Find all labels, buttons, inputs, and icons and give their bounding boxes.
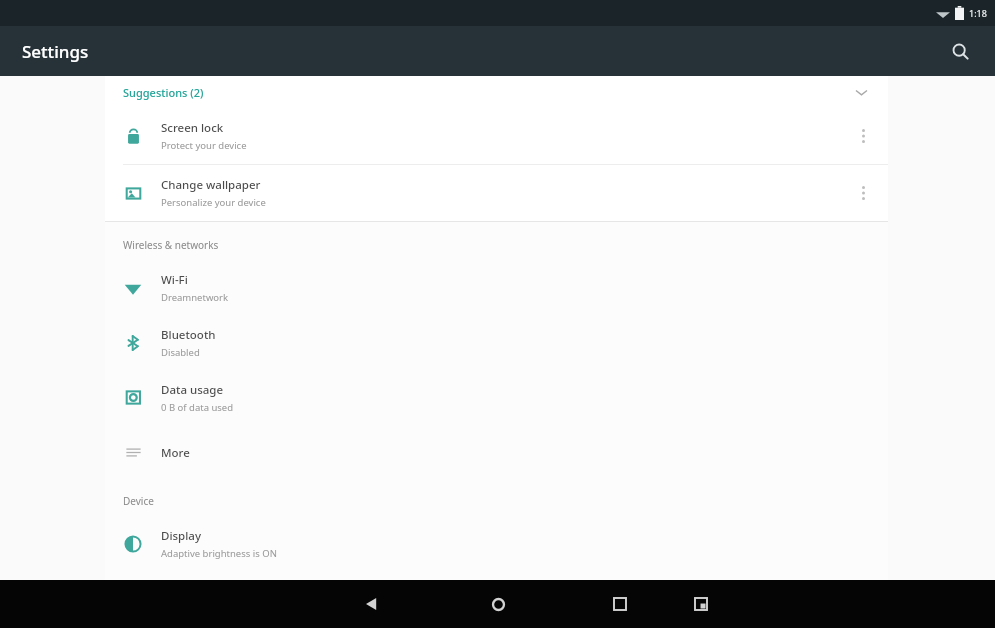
button[interactable]: Bluetooth xyxy=(105,315,888,370)
staticText: Device xyxy=(123,494,154,508)
button[interactable]: Wi-Fi xyxy=(105,260,888,315)
button[interactable]: More options xyxy=(850,180,876,206)
button[interactable]: Suggestions (2) xyxy=(105,76,888,108)
button[interactable]: Change wallpaper xyxy=(105,165,888,221)
staticText: Adaptive brightness is ON xyxy=(161,547,277,560)
button[interactable]: More xyxy=(105,425,888,480)
button[interactable]: Home xyxy=(481,587,515,621)
staticText: Settings xyxy=(22,40,89,63)
other: Collapse suggestions xyxy=(850,81,872,103)
staticText: 0 B of data used xyxy=(161,401,234,414)
staticText: Personalize your device xyxy=(161,196,266,209)
button[interactable]: Data usage xyxy=(105,370,888,425)
staticText: Disabled xyxy=(161,346,200,359)
staticText: More xyxy=(161,445,190,461)
button[interactable]: Screen lock xyxy=(105,108,888,164)
staticText: Suggestions (2) xyxy=(123,85,204,100)
staticText: Screen lock xyxy=(161,120,224,136)
staticText: Display xyxy=(161,528,201,544)
button[interactable]: Recent apps xyxy=(603,587,637,621)
staticText: Wireless & networks xyxy=(123,238,219,252)
staticText: Data usage xyxy=(161,382,224,398)
button[interactable]: Search xyxy=(943,34,977,68)
button[interactable]: More options xyxy=(850,123,876,149)
staticText: Change wallpaper xyxy=(161,177,261,193)
button[interactable]: Back xyxy=(355,587,389,621)
staticText: Protect your device xyxy=(161,139,247,152)
button[interactable]: Screenshot xyxy=(684,587,718,621)
button[interactable]: Display xyxy=(105,516,888,571)
staticText: Bluetooth xyxy=(161,327,216,343)
staticText: Dreamnetwork xyxy=(161,291,229,304)
staticText: Wi-Fi xyxy=(161,272,188,288)
staticText: 1:18 xyxy=(969,7,987,19)
